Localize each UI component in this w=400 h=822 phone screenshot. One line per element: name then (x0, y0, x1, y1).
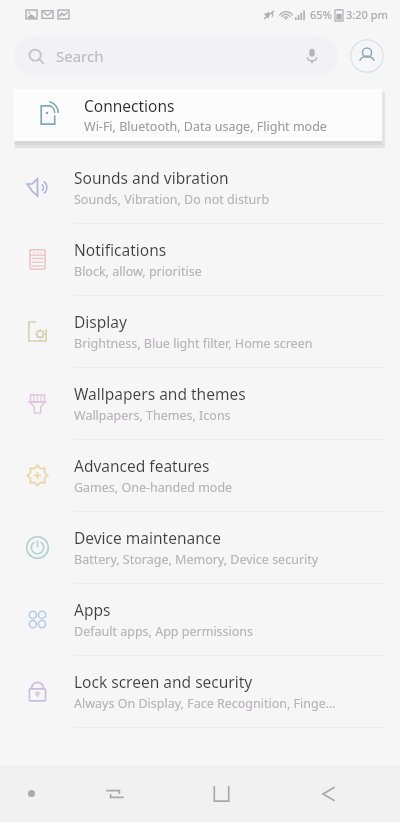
staticText: Device maintenance (74, 527, 221, 548)
button[interactable]: Account (348, 37, 386, 75)
staticText: Connections (84, 95, 175, 116)
button[interactable]: Notifications (0, 224, 400, 295)
button[interactable]: Back (275, 765, 382, 822)
staticText: Wallpapers, Themes, Icons (74, 407, 231, 424)
staticText: Apps (74, 599, 111, 620)
button[interactable]: Display (0, 296, 400, 367)
staticText: Block, allow, prioritise (74, 263, 202, 280)
button[interactable]: Sounds and vibration (0, 152, 400, 223)
button[interactable]: Home (168, 765, 275, 822)
button[interactable]: Hide navigation bar (0, 765, 62, 822)
staticText: Display (74, 311, 127, 332)
staticText: Notifications (74, 239, 167, 260)
staticText: Games, One-handed mode (74, 479, 233, 496)
staticText: Sounds and vibration (74, 167, 229, 188)
button[interactable]: Recents (62, 765, 168, 822)
button[interactable]: Lock screen and security (0, 656, 400, 727)
button[interactable]: Connections (14, 89, 382, 141)
staticText: Always On Display, Face Recognition, Fin… (74, 695, 336, 712)
staticText: Brightness, Blue light filter, Home scre… (74, 335, 313, 352)
staticText: Advanced features (74, 455, 210, 476)
button[interactable]: Device maintenance (0, 512, 400, 583)
button[interactable]: Voice search (300, 44, 324, 68)
staticText: Wallpapers and themes (74, 383, 246, 404)
staticText: Lock screen and security (74, 671, 253, 692)
staticText: Wi-Fi, Bluetooth, Data usage, Flight mod… (84, 118, 327, 135)
staticText: Battery, Storage, Memory, Device securit… (74, 551, 319, 568)
staticText: Search (56, 46, 104, 66)
button[interactable]: Apps (0, 584, 400, 655)
staticText: 65% (310, 7, 332, 22)
staticText: Sounds, Vibration, Do not disturb (74, 191, 270, 208)
button[interactable]: Advanced features (0, 440, 400, 511)
staticText: Default apps, App permissions (74, 623, 254, 640)
button[interactable]: Wallpapers and themes (0, 368, 400, 439)
button[interactable]: Search (14, 36, 338, 76)
staticText: 3:20 pm (346, 7, 388, 22)
